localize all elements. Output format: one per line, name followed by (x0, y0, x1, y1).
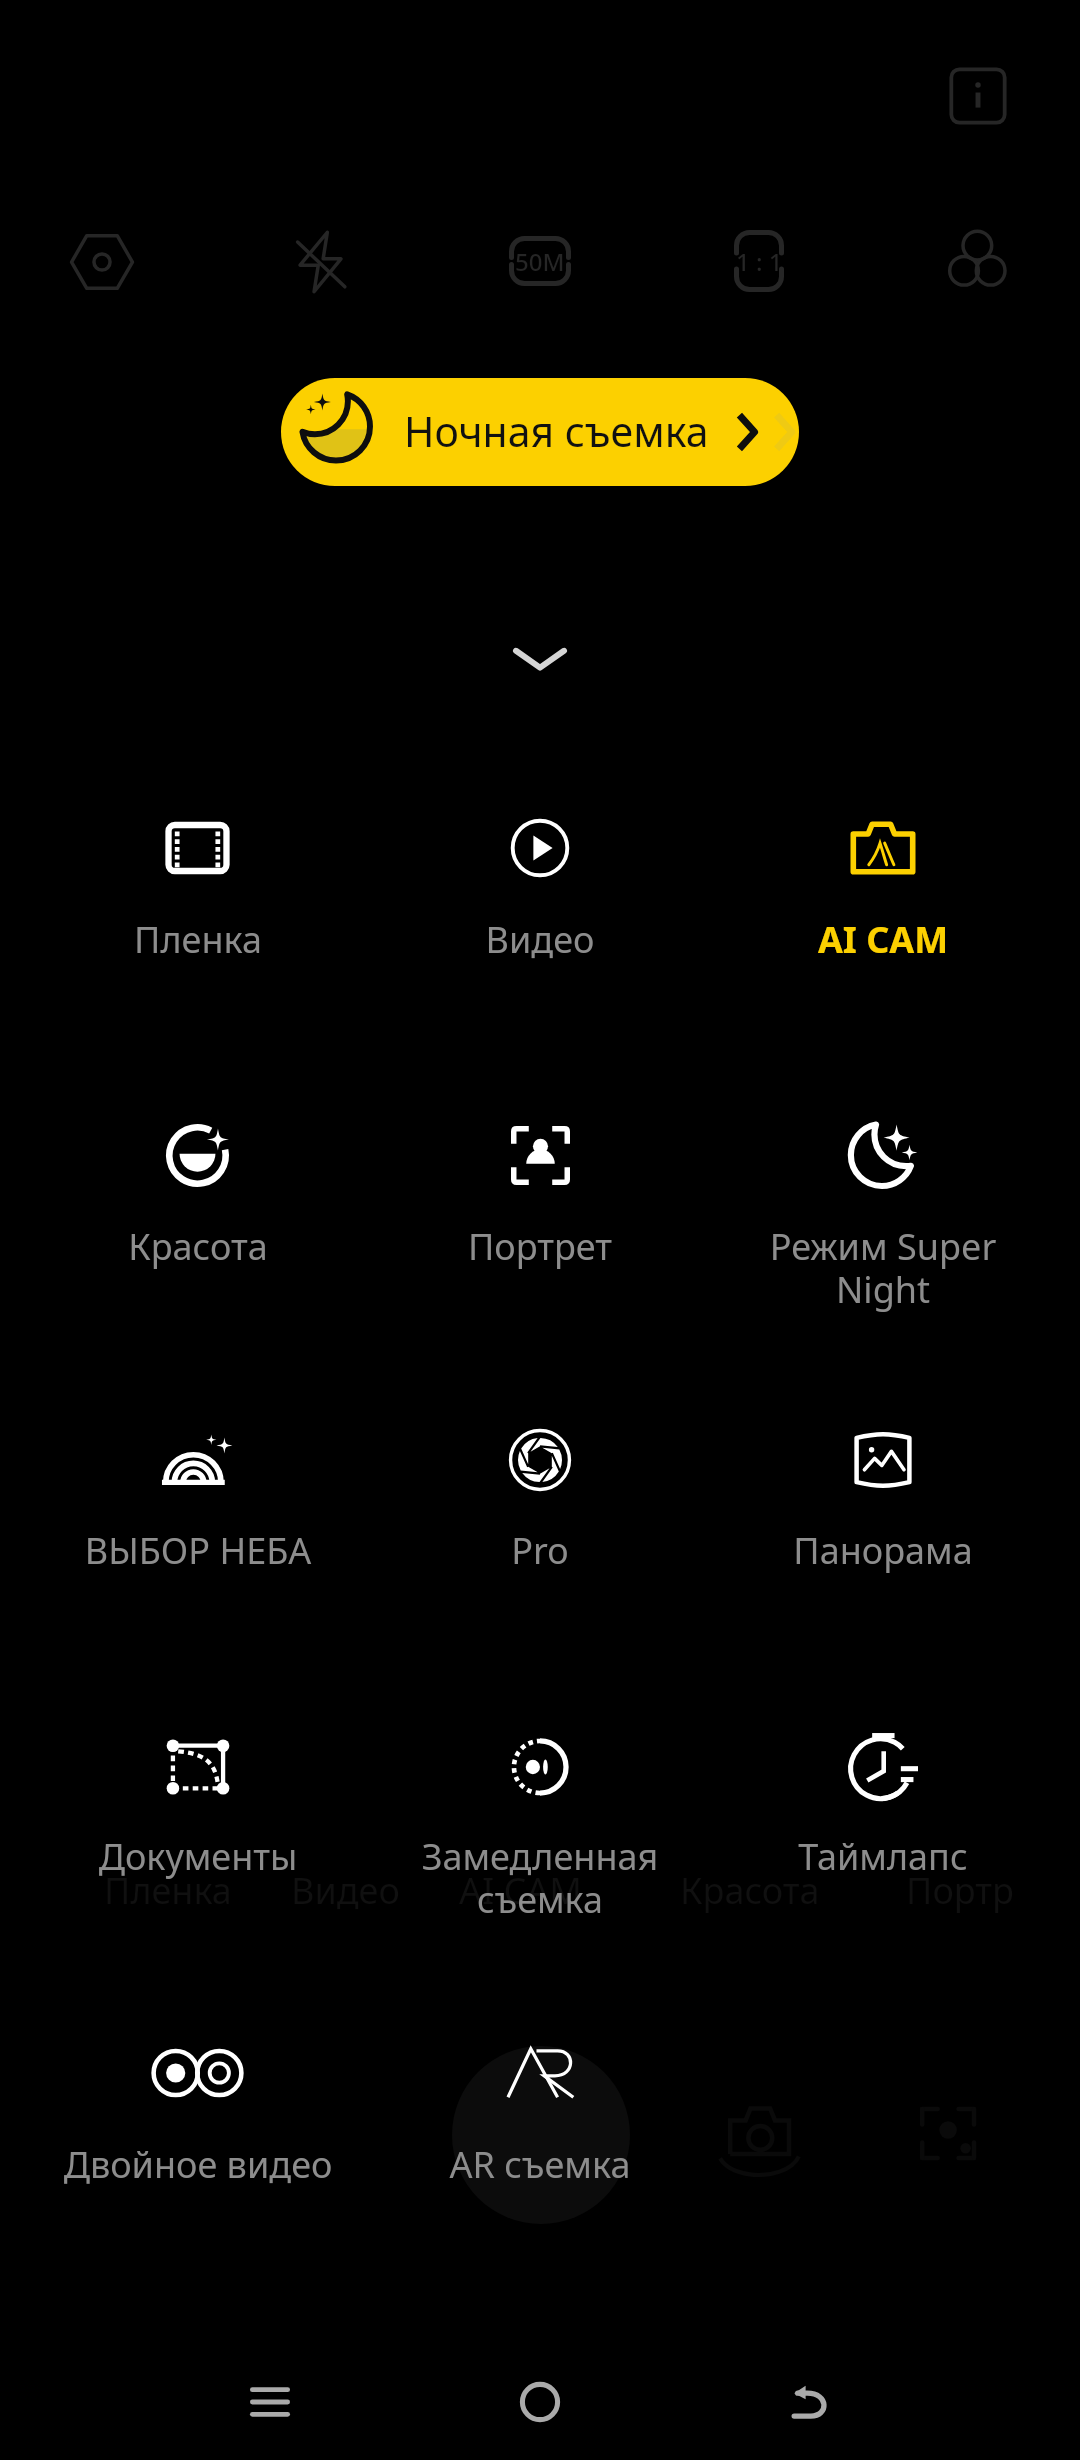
button[interactable]: Портрет (400, 1095, 680, 1310)
staticText: Пленка (58, 915, 338, 964)
staticText: Панорама (743, 1526, 1023, 1575)
staticText: ВЫБОР НЕБА (58, 1526, 338, 1575)
staticText: Портрет (400, 1222, 680, 1271)
button[interactable]: Ночная съемка (281, 378, 799, 486)
staticText: Красота (680, 1866, 820, 1915)
staticText: 1 : 1 (736, 245, 783, 278)
button[interactable]: Info (938, 56, 1018, 136)
button[interactable]: Pro (400, 1400, 680, 1615)
button[interactable]: AR съемка (400, 2013, 680, 2228)
button[interactable]: Пленка (58, 788, 338, 1003)
button[interactable]: Back (675, 2358, 945, 2446)
staticText: Таймлапс (743, 1832, 1023, 1881)
staticText: Ночная съемка (404, 403, 709, 459)
button[interactable]: Flash off (272, 214, 368, 310)
staticText: AI CAM (743, 915, 1023, 964)
button[interactable]: Lens (54, 214, 150, 310)
button[interactable]: Красота (58, 1095, 338, 1310)
staticText: Красота (58, 1222, 338, 1271)
button[interactable]: ВЫБОР НЕБА (58, 1400, 338, 1615)
staticText: Режим Super Night (743, 1222, 1023, 1314)
staticText: AI CAM (459, 1866, 582, 1915)
button[interactable]: Filters (929, 214, 1025, 310)
button[interactable]: Таймлапс (743, 1707, 1023, 1922)
staticText: Двойное видео (58, 2140, 338, 2189)
button[interactable]: Resolution 50M (492, 213, 588, 309)
staticText: Пленка (104, 1866, 232, 1915)
button[interactable]: Recent apps (135, 2358, 405, 2446)
staticText: Документы (58, 1832, 338, 1881)
button[interactable]: Панорама (743, 1400, 1023, 1615)
button[interactable]: Видео (400, 788, 680, 1003)
button[interactable]: Режим Super Night (743, 1095, 1023, 1310)
button[interactable]: Замедленная съемка (400, 1707, 680, 1922)
staticText: Видео (400, 915, 680, 964)
staticText: Видео (291, 1866, 400, 1915)
button[interactable]: Документы (58, 1707, 338, 1922)
staticText: 50M (515, 245, 565, 278)
button[interactable]: Двойное видео (58, 2013, 338, 2228)
button[interactable]: Collapse (490, 608, 590, 708)
staticText: Портр (906, 1866, 1014, 1915)
staticText: AR съемка (400, 2140, 680, 2189)
staticText: Замедленная съемка (400, 1832, 680, 1924)
staticText: Pro (400, 1526, 680, 1575)
button[interactable]: Aspect ratio 1:1 (711, 213, 807, 309)
button[interactable]: AI CAM (743, 788, 1023, 1003)
button[interactable]: Home (405, 2358, 675, 2446)
